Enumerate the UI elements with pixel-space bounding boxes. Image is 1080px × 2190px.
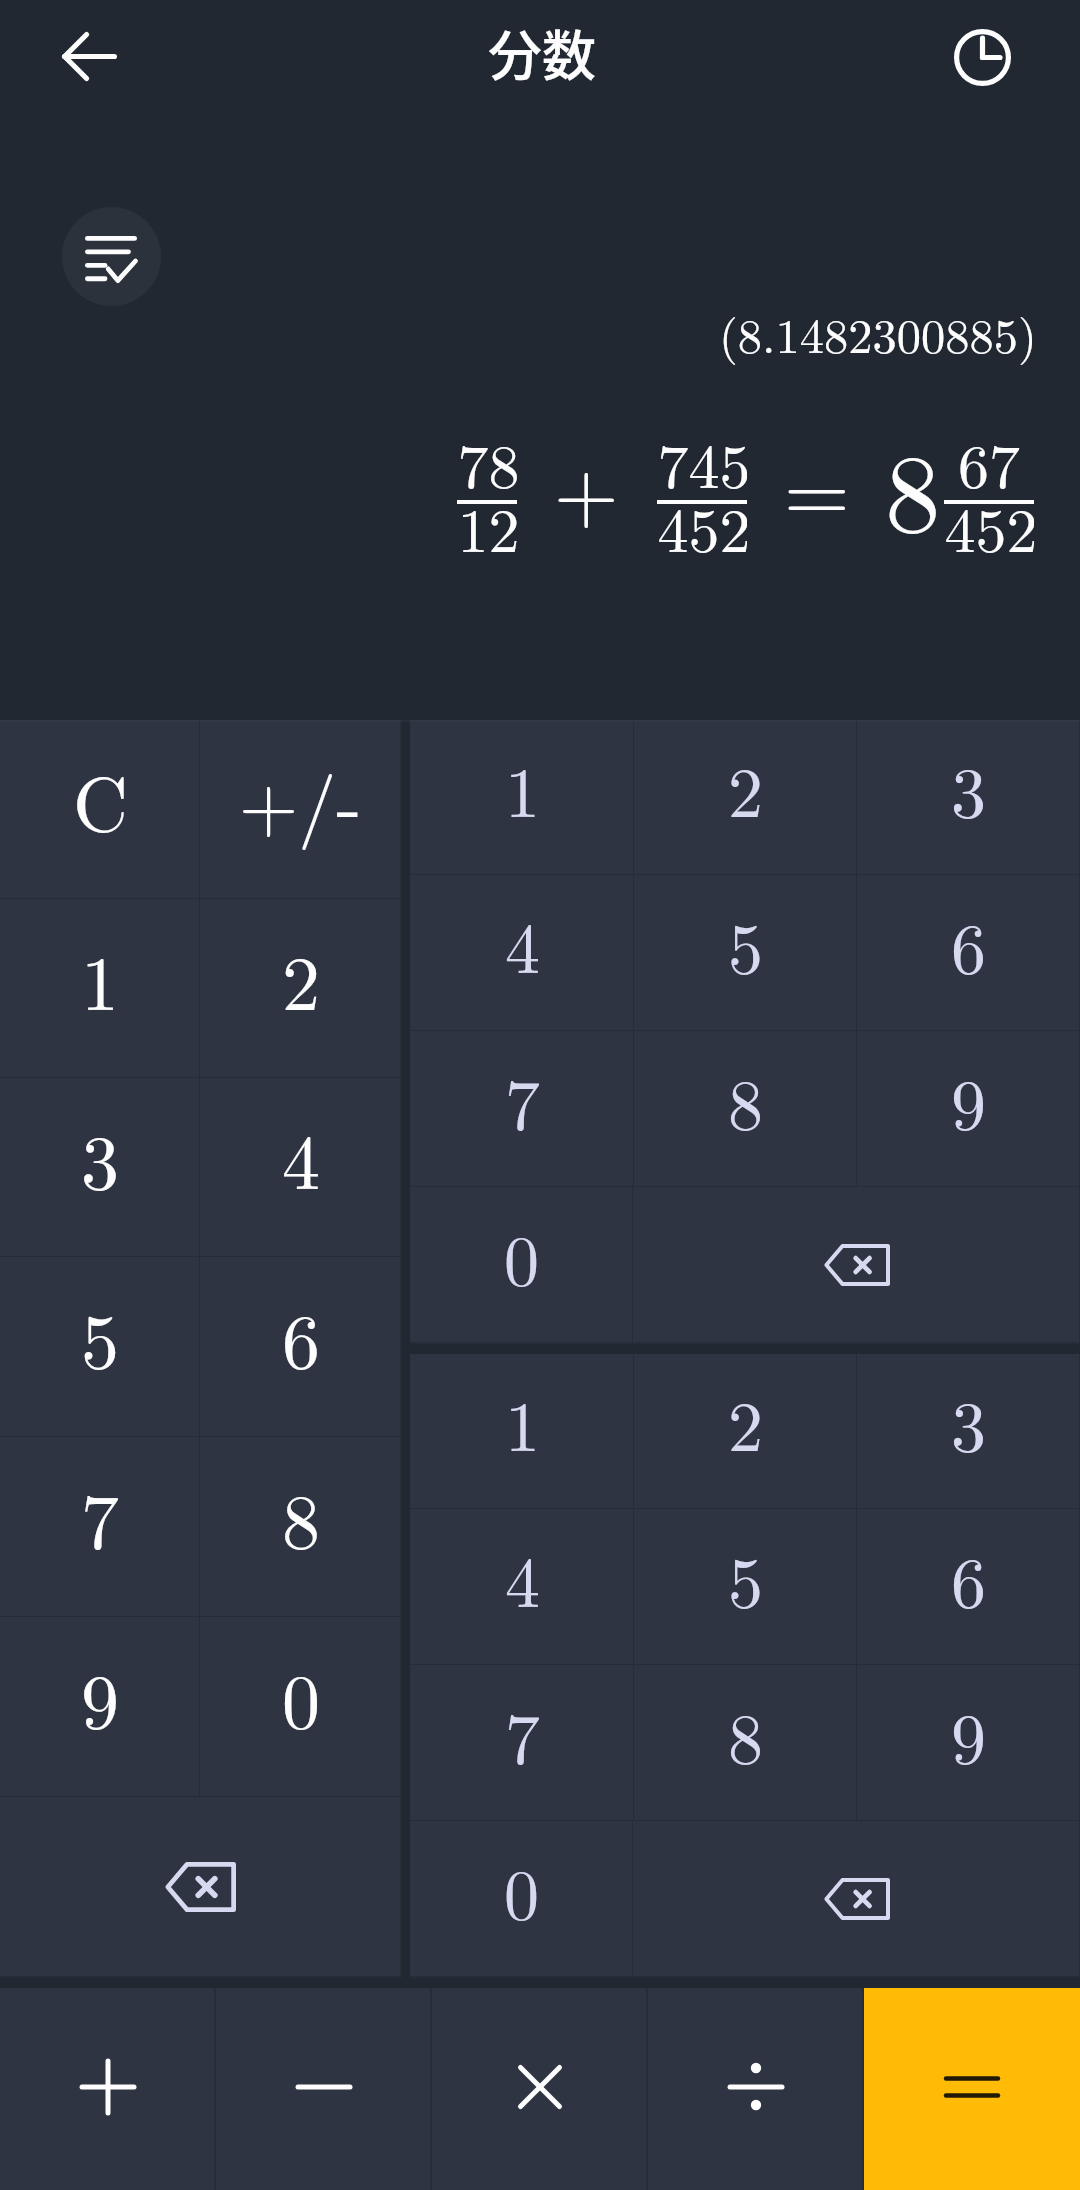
button[interactable]: Backspace — [633, 1187, 1080, 1343]
button[interactable]: 3 — [857, 720, 1080, 875]
staticText: 8 — [728, 1684, 763, 1783]
button[interactable]: 1 — [410, 1354, 634, 1509]
button[interactable]: 1 — [0, 899, 200, 1078]
button[interactable]: 4 — [200, 1078, 401, 1257]
button[interactable]: 3 — [857, 1354, 1080, 1509]
staticText: 7 — [505, 1684, 540, 1783]
staticText: 0 — [504, 1206, 539, 1305]
button[interactable]: 3 — [0, 1078, 200, 1257]
button[interactable]: 5 — [0, 1257, 200, 1437]
staticText: 分数 — [488, 13, 596, 91]
button[interactable]: Back — [50, 17, 128, 95]
staticText: 6 — [282, 1282, 320, 1390]
button[interactable]: 2 — [200, 899, 401, 1078]
staticText: 9 — [951, 1684, 986, 1783]
button[interactable]: 9 — [857, 1031, 1080, 1187]
staticText: 4 — [505, 1528, 540, 1627]
button[interactable]: 6 — [857, 1509, 1080, 1665]
staticText: 5 — [728, 1528, 763, 1627]
staticText: 452 — [657, 482, 747, 570]
staticText: 3 — [951, 738, 986, 837]
staticText: 7 — [505, 1050, 540, 1149]
button[interactable]: Backspace — [633, 1821, 1080, 1977]
button[interactable]: 7 — [410, 1665, 634, 1821]
staticText: = — [784, 426, 850, 546]
staticText: 78 — [457, 418, 517, 506]
button[interactable]: 6 — [200, 1257, 401, 1437]
staticText: 6 — [951, 894, 986, 993]
button[interactable]: 4 — [410, 1509, 634, 1665]
staticText: 8 — [885, 407, 941, 564]
staticText: 5 — [728, 894, 763, 993]
staticText: 3 — [81, 1103, 119, 1211]
staticText: + — [554, 427, 619, 545]
button[interactable]: History — [944, 19, 1020, 95]
button[interactable]: 5 — [634, 1509, 857, 1665]
staticText: 12 — [457, 482, 517, 570]
button[interactable]: 4 — [410, 875, 634, 1031]
button[interactable]: 2 — [634, 1354, 857, 1509]
button[interactable]: Backspace — [0, 1797, 401, 1977]
staticText: 9 — [81, 1642, 119, 1750]
button[interactable]: 1 — [410, 720, 634, 875]
staticText: 1 — [505, 738, 540, 837]
button[interactable]: 0 — [200, 1617, 401, 1797]
button[interactable]: Minus — [216, 1988, 432, 2190]
staticText: 67 — [944, 418, 1034, 506]
staticText: 2 — [728, 1372, 763, 1471]
button[interactable]: 6 — [857, 875, 1080, 1031]
staticText: 7 — [81, 1462, 119, 1570]
button[interactable]: 7 — [410, 1031, 634, 1187]
button[interactable]: Equals — [864, 1988, 1080, 2190]
button[interactable]: History list — [62, 207, 161, 306]
button[interactable]: 7 — [0, 1437, 200, 1617]
button[interactable]: 0 — [410, 1821, 633, 1977]
staticText: 6 — [951, 1528, 986, 1627]
staticText: 8 — [728, 1050, 763, 1149]
staticText: 0 — [282, 1642, 320, 1750]
button[interactable]: 0 — [410, 1187, 633, 1343]
staticText: +/- — [239, 745, 362, 853]
staticText: 1 — [81, 924, 119, 1032]
staticText: 1 — [505, 1372, 540, 1471]
button[interactable]: C — [0, 720, 200, 899]
button[interactable]: 8 — [634, 1031, 857, 1187]
button[interactable]: Multiply — [432, 1988, 648, 2190]
button[interactable]: 8 — [200, 1437, 401, 1617]
staticText: 745 — [657, 418, 747, 506]
staticText: 0 — [504, 1840, 539, 1939]
button[interactable]: Plus — [0, 1988, 216, 2190]
staticText: 2 — [728, 738, 763, 837]
button[interactable]: 9 — [0, 1617, 200, 1797]
staticText: 452 — [944, 482, 1034, 570]
staticText: (8.1482300885) — [719, 298, 1037, 367]
staticText: C — [73, 745, 128, 853]
staticText: 3 — [951, 1372, 986, 1471]
staticText: 8 — [282, 1462, 320, 1570]
staticText: 5 — [81, 1282, 119, 1390]
staticText: 2 — [282, 924, 320, 1032]
button[interactable]: 8 — [634, 1665, 857, 1821]
staticText: 9 — [951, 1050, 986, 1149]
button[interactable]: +/- — [200, 720, 401, 899]
button[interactable]: 9 — [857, 1665, 1080, 1821]
staticText: 4 — [282, 1103, 320, 1211]
button[interactable]: 2 — [634, 720, 857, 875]
staticText: 4 — [505, 894, 540, 993]
button[interactable]: Divide — [648, 1988, 864, 2190]
button[interactable]: 5 — [634, 875, 857, 1031]
